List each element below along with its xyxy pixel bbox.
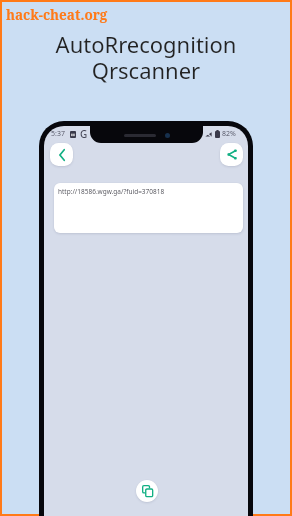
staticText: hack-cheat.org [6, 6, 108, 24]
staticText: http://18586.wgw.ga/?fuid=370818 [58, 187, 165, 196]
button[interactable]: http://18586.wgw.ga/?fuid=370818 [54, 183, 243, 233]
staticText: G [80, 127, 88, 141]
button[interactable]: Back [50, 143, 73, 166]
staticText: AutoRrecognition Qrscanner [2, 29, 290, 86]
staticText: 5:37 [51, 129, 65, 139]
button[interactable]: Copy [136, 480, 158, 502]
button[interactable]: Share [220, 143, 243, 166]
staticText: 82% [222, 129, 236, 139]
